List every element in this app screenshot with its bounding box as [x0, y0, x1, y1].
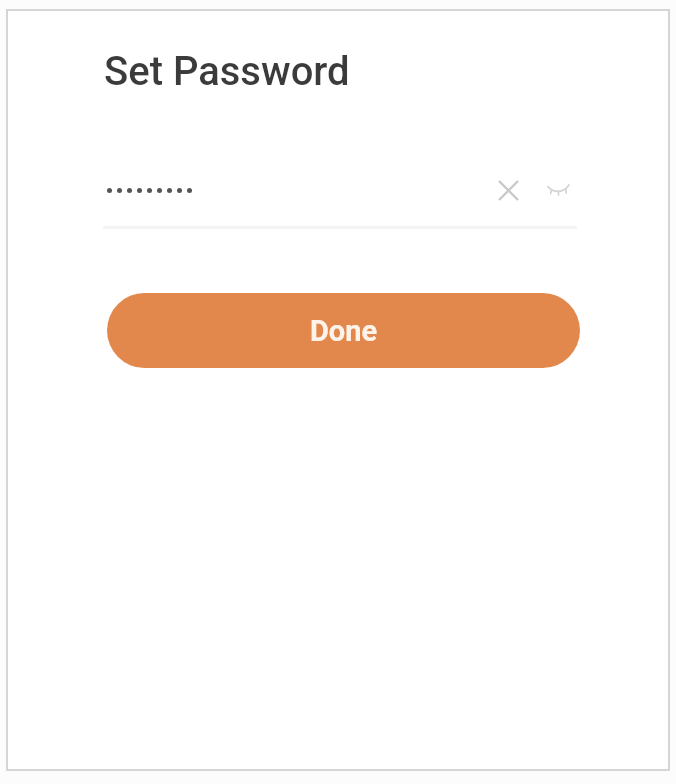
button[interactable]: Done	[107, 293, 580, 368]
button[interactable]: Show password	[536, 167, 580, 211]
button[interactable]: Password	[103, 166, 483, 214]
staticText: Done	[310, 314, 378, 348]
button[interactable]: Clear password	[486, 168, 530, 212]
staticText: Set Password	[104, 48, 350, 95]
